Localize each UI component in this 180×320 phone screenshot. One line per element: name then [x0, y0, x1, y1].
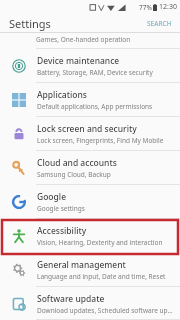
staticText: 77% [139, 3, 152, 12]
staticText: 12:30 [159, 2, 177, 12]
staticText: Settings [9, 16, 51, 31]
staticText: Device maintenance [37, 55, 120, 67]
staticText: Download updates, Scheduled software upd… [37, 306, 174, 315]
staticText: SEARCH [147, 19, 172, 28]
staticText: Cloud and accounts [37, 157, 117, 169]
button[interactable]: Software update [0, 287, 180, 320]
staticText: Google [37, 191, 67, 203]
button[interactable]: Google [0, 185, 180, 219]
staticText: Games, One-handed operation [36, 35, 131, 44]
button[interactable]: General management [0, 253, 180, 287]
button[interactable]: SEARCH [139, 16, 180, 31]
button[interactable]: Accessibility [0, 219, 180, 253]
staticText: Lock screen and security [37, 123, 137, 135]
button[interactable]: Device maintenance [0, 49, 180, 83]
button[interactable]: Lock screen and security [0, 117, 180, 151]
staticText: Google settings [37, 204, 85, 213]
staticText: Software update [37, 293, 105, 305]
staticText: Accessibility [37, 225, 87, 237]
button[interactable]: Applications [0, 83, 180, 117]
button[interactable]: Cloud and accounts [0, 151, 180, 185]
staticText: Default applications, App permissions [37, 102, 153, 111]
button[interactable]: Games, One-handed operation [0, 33, 180, 49]
staticText: Lock screen, Fingerprints, Find My Mobil… [37, 136, 164, 145]
staticText: Samsung Cloud, Backup [37, 170, 111, 179]
staticText: General management [37, 259, 126, 271]
staticText: Language and input, Date and time, Reset [37, 272, 166, 281]
staticText: Vision, Hearing, Dexterity and interacti… [37, 238, 163, 247]
staticText: Applications [37, 89, 87, 101]
staticText: Battery, Storage, RAM, Device security [37, 68, 153, 77]
